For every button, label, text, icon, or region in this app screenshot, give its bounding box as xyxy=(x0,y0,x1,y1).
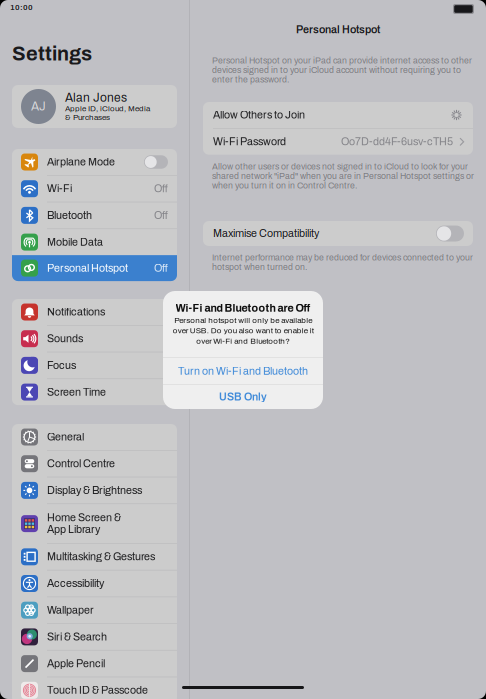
staticText: Home Screen & xyxy=(47,512,121,524)
staticText: Wi-Fi Password xyxy=(213,136,286,147)
staticText: Sounds xyxy=(47,333,83,344)
button[interactable]: Touch ID & Passcode xyxy=(12,677,177,699)
staticText: Bluetooth xyxy=(47,210,92,221)
staticText: Off xyxy=(154,262,168,274)
button[interactable]: Maximise Compatibility xyxy=(203,221,473,246)
button[interactable]: Allow Others to Join xyxy=(203,102,473,128)
staticText: Personal Hotspot xyxy=(47,262,128,274)
button[interactable]: Accessibility xyxy=(12,570,177,596)
staticText: AJ xyxy=(31,100,46,113)
staticText: Wi-Fi and Bluetooth are Off xyxy=(175,302,310,314)
staticText: Off xyxy=(154,183,168,194)
button[interactable]: Sounds xyxy=(12,326,177,352)
staticText: Allow Others to Join xyxy=(213,109,305,121)
button[interactable]: Focus xyxy=(12,352,177,378)
button[interactable]: Airplane Mode xyxy=(12,149,177,175)
button[interactable]: Screen Time xyxy=(12,379,177,405)
staticText: USB Only xyxy=(219,391,267,403)
button[interactable]: Apple Pencil xyxy=(12,651,177,677)
staticText: Maximise Compatibility xyxy=(213,228,319,239)
staticText: Touch ID & Passcode xyxy=(47,684,148,696)
staticText: Focus xyxy=(47,360,76,371)
button[interactable]: Mobile Data xyxy=(12,229,177,255)
staticText: Notifications xyxy=(47,306,105,318)
button[interactable]: Home Screen & xyxy=(12,504,177,543)
button[interactable]: Display & Brightness xyxy=(12,477,177,503)
staticText: Screen Time xyxy=(47,386,106,398)
staticText: Personal Hotspot xyxy=(296,24,380,36)
staticText: & Purchases xyxy=(65,113,110,122)
button[interactable]: Turn on Wi-Fi and Bluetooth xyxy=(163,358,323,385)
staticText: Alan Jones xyxy=(65,91,127,104)
staticText: Internet performance may be reduced for … xyxy=(212,253,473,272)
button[interactable]: Notifications xyxy=(12,299,177,325)
staticText: Turn on Wi-Fi and Bluetooth xyxy=(178,365,308,377)
button[interactable]: Wi-Fi xyxy=(12,176,177,202)
staticText: 10:00 xyxy=(10,3,33,12)
staticText: Multitasking & Gestures xyxy=(47,551,155,563)
staticText: Mobile Data xyxy=(47,236,103,248)
staticText: Oo7D-dd4F-6usv-cTH5 xyxy=(341,136,453,147)
button[interactable]: Personal Hotspot xyxy=(12,255,177,281)
staticText: General xyxy=(47,431,84,443)
staticText: Apple Pencil xyxy=(47,658,105,669)
staticText: Control Centre xyxy=(47,458,115,469)
staticText: Off xyxy=(154,210,168,221)
staticText: Siri & Search xyxy=(47,631,107,643)
staticText: App Library xyxy=(47,524,100,535)
button[interactable]: USB Only xyxy=(163,385,323,409)
staticText: Wi-Fi xyxy=(47,183,72,194)
staticText: Accessibility xyxy=(47,578,104,589)
staticText: Settings xyxy=(12,43,92,65)
staticText: Apple ID, iCloud, Media xyxy=(65,104,150,113)
staticText: Allow other users or devices not signed … xyxy=(212,162,474,190)
button[interactable]: Bluetooth xyxy=(12,202,177,228)
button[interactable]: Siri & Search xyxy=(12,624,177,650)
button[interactable]: Wallpaper xyxy=(12,597,177,623)
staticText: Display & Brightness xyxy=(47,485,142,496)
button[interactable]: AJ xyxy=(12,85,177,128)
button[interactable]: Multitasking & Gestures xyxy=(12,544,177,570)
staticText: Personal hotspot will only be available … xyxy=(172,316,313,345)
button[interactable]: Wi-Fi Password xyxy=(203,129,473,155)
button[interactable]: General xyxy=(12,424,177,450)
staticText: Airplane Mode xyxy=(47,156,115,168)
button[interactable]: Control Centre xyxy=(12,451,177,477)
staticText: Wallpaper xyxy=(47,604,94,616)
staticText: Personal Hotspot on your iPad can provid… xyxy=(212,56,472,84)
